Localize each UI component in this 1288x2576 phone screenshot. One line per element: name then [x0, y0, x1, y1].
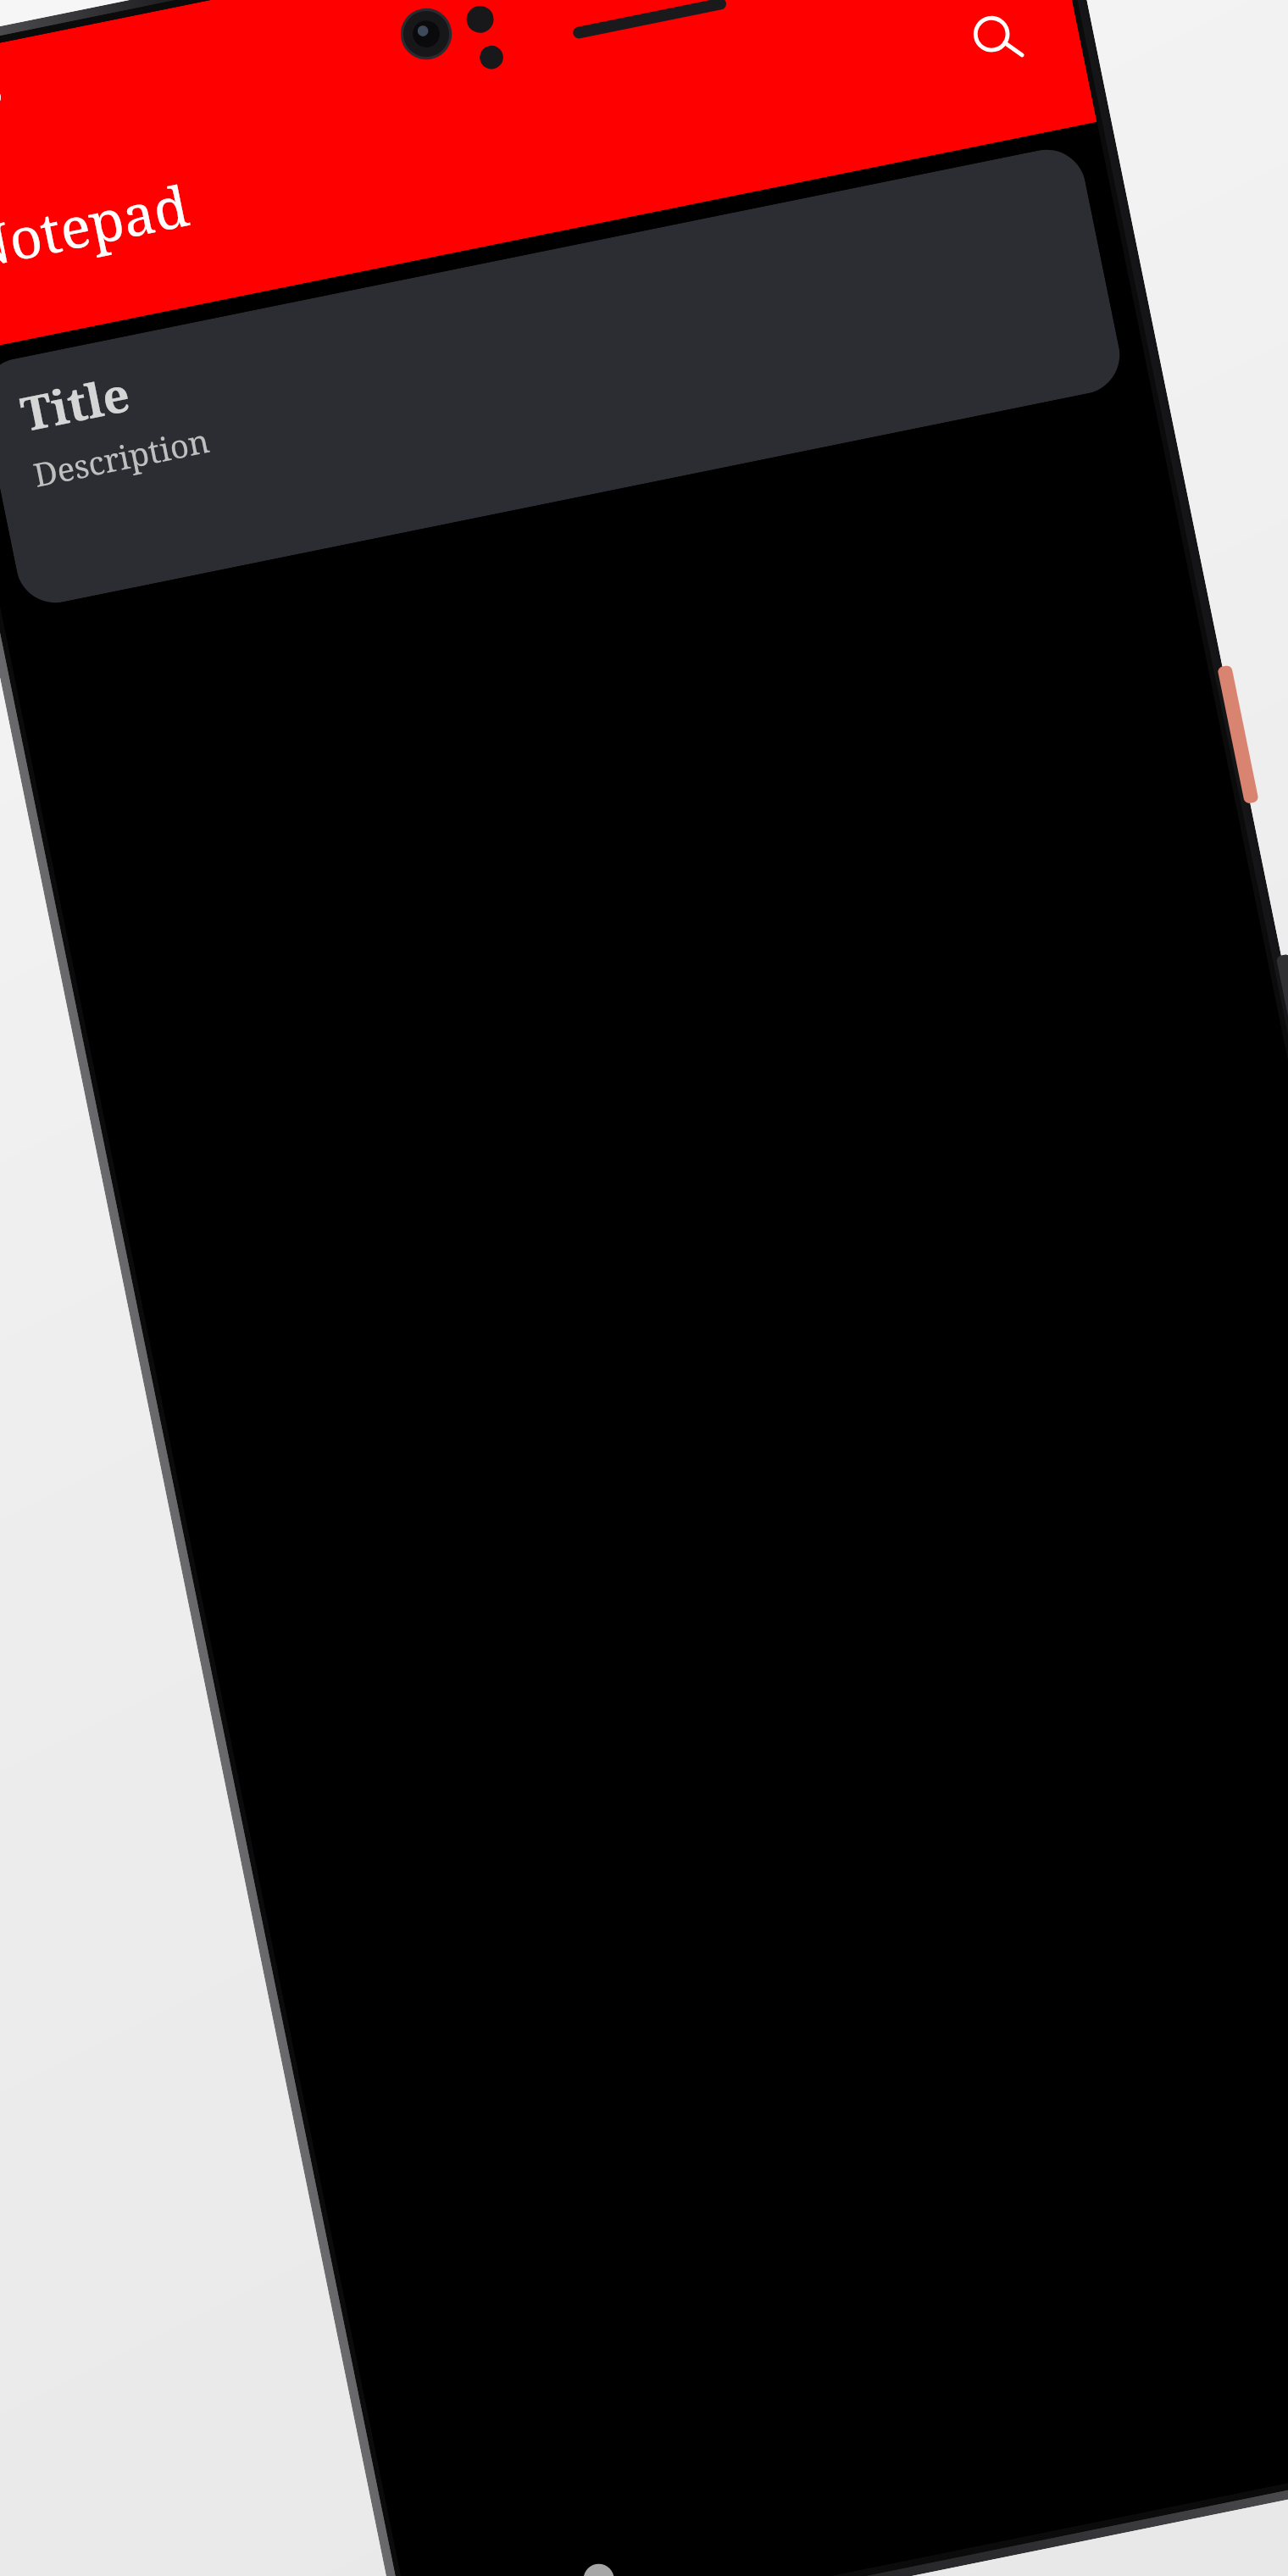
staticText: Notepad [0, 167, 195, 285]
staticText: Title [15, 361, 135, 445]
staticText: 5:55 [0, 69, 6, 125]
button[interactable]: Title [0, 143, 1127, 610]
button[interactable]: Search [938, 0, 1057, 98]
staticText: Description [30, 418, 214, 497]
